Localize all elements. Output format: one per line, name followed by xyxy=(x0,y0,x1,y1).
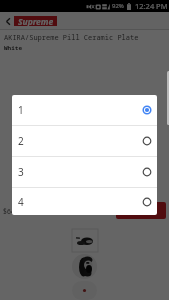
staticText: Supreme xyxy=(18,16,54,26)
button[interactable]: 1 xyxy=(12,95,157,125)
button[interactable] xyxy=(72,229,98,252)
staticText: White xyxy=(4,44,23,52)
button[interactable]: add to cart xyxy=(116,202,166,219)
button[interactable]: 2 xyxy=(12,126,157,156)
button[interactable] xyxy=(72,281,97,300)
staticText: 12:24 PM xyxy=(135,1,168,11)
staticText: add to cart xyxy=(126,207,157,215)
button[interactable]: Back xyxy=(2,15,14,27)
staticText: 4 xyxy=(18,195,24,209)
staticText: 1 xyxy=(18,103,24,117)
staticText: AKIRA/Supreme Pill Ceramic Plate xyxy=(4,33,139,43)
staticText: 3 xyxy=(18,165,24,179)
button[interactable]: Supreme xyxy=(14,16,57,26)
staticText: $64 xyxy=(3,207,15,216)
staticText: 92% xyxy=(112,2,124,10)
staticText: 2 xyxy=(18,134,24,148)
button[interactable] xyxy=(72,254,97,279)
button[interactable]: 3 xyxy=(12,157,157,187)
button[interactable]: 4 xyxy=(12,188,157,215)
